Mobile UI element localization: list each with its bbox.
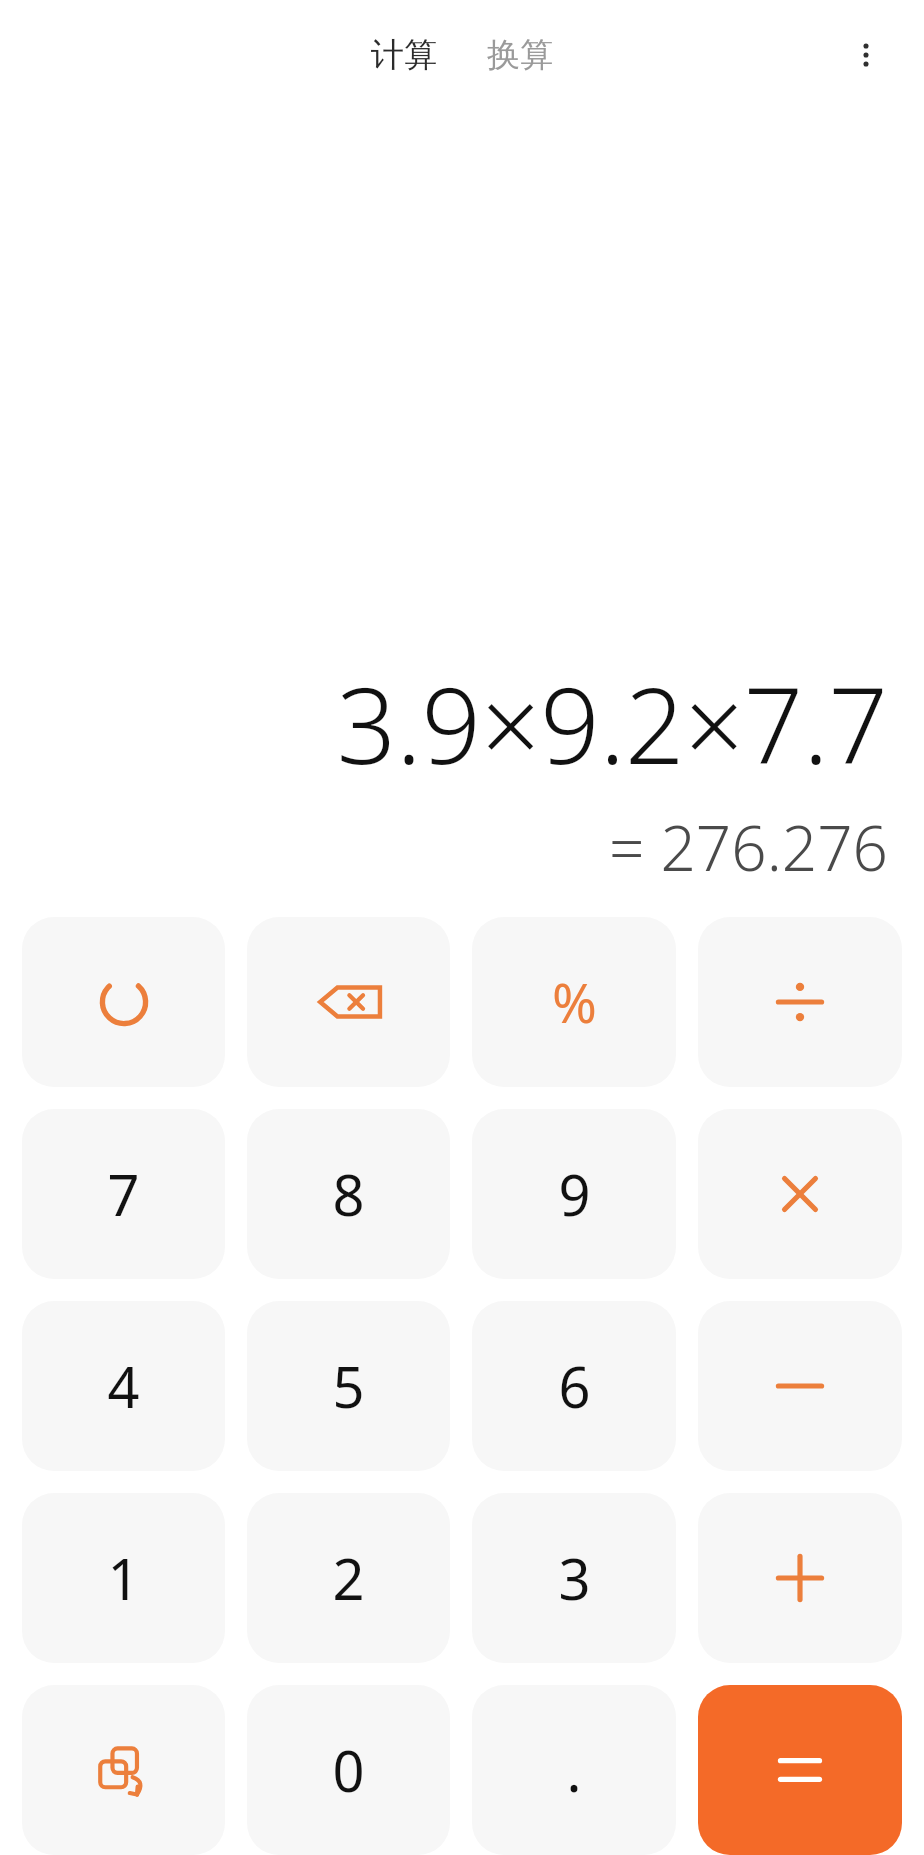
- staticText: 0: [332, 1732, 365, 1808]
- button[interactable]: 7: [22, 1109, 225, 1279]
- button[interactable]: More options: [838, 27, 894, 83]
- staticText: 8: [332, 1156, 365, 1232]
- button[interactable]: 8: [247, 1109, 450, 1279]
- staticText: 1: [107, 1540, 140, 1616]
- staticText: 7: [107, 1156, 140, 1232]
- button[interactable]: 0: [247, 1685, 450, 1855]
- button[interactable]: 4: [22, 1301, 225, 1471]
- staticText: 9: [558, 1156, 591, 1232]
- button[interactable]: Backspace: [247, 917, 450, 1087]
- staticText: 5: [332, 1348, 365, 1424]
- button[interactable]: Minus: [698, 1301, 902, 1471]
- button[interactable]: Clear: [22, 917, 225, 1087]
- staticText: 3: [558, 1540, 591, 1616]
- staticText: 2: [332, 1540, 365, 1616]
- button[interactable]: 3: [472, 1493, 676, 1663]
- staticText: 6: [558, 1348, 591, 1424]
- button[interactable]: 5: [247, 1301, 450, 1471]
- button[interactable]: 2: [247, 1493, 450, 1663]
- button[interactable]: Divide: [698, 917, 902, 1087]
- button[interactable]: 计算: [361, 28, 447, 82]
- button[interactable]: 6: [472, 1301, 676, 1471]
- staticText: 4: [107, 1348, 140, 1424]
- button[interactable]: Plus: [698, 1493, 902, 1663]
- button[interactable]: 换算: [477, 28, 563, 82]
- staticText: .: [566, 1732, 582, 1808]
- button[interactable]: Unit convert: [22, 1685, 225, 1855]
- button[interactable]: 9: [472, 1109, 676, 1279]
- staticText: 换算: [487, 34, 553, 76]
- button[interactable]: %: [472, 917, 676, 1087]
- staticText: 3.9×9.2×7.7: [336, 653, 888, 795]
- staticText: %: [552, 965, 597, 1039]
- button[interactable]: .: [472, 1685, 676, 1855]
- button[interactable]: 1: [22, 1493, 225, 1663]
- button[interactable]: Multiply: [698, 1109, 902, 1279]
- staticText: = 276.276: [608, 805, 888, 889]
- button[interactable]: Equals: [698, 1685, 902, 1855]
- staticText: 计算: [371, 34, 437, 76]
